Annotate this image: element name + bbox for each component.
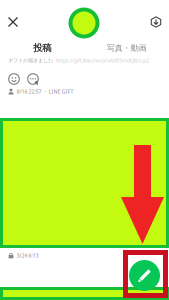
staticText: 写真・動画 xyxy=(107,43,147,53)
button[interactable]: Add reaction xyxy=(5,72,23,86)
staticText: 3/24 6:13 xyxy=(16,252,38,259)
button[interactable]: 写真・動画 xyxy=(84,39,169,57)
button[interactable]: Save xyxy=(142,8,169,36)
button[interactable]: Close xyxy=(0,8,27,36)
button[interactable]: Comment xyxy=(24,72,42,86)
staticText: 8/16 22:57 ・ LINE GIFT xyxy=(16,88,73,95)
button[interactable]: New post xyxy=(129,260,160,291)
button[interactable]: 投稿 xyxy=(0,39,84,57)
button[interactable]: Profile xyxy=(69,8,99,38)
staticText: 投稿 xyxy=(33,42,51,54)
staticText: https://gift.line.me/p/xKd93mdQ8sLp2 xyxy=(56,57,149,64)
staticText: ギフトが届きました xyxy=(8,57,53,64)
